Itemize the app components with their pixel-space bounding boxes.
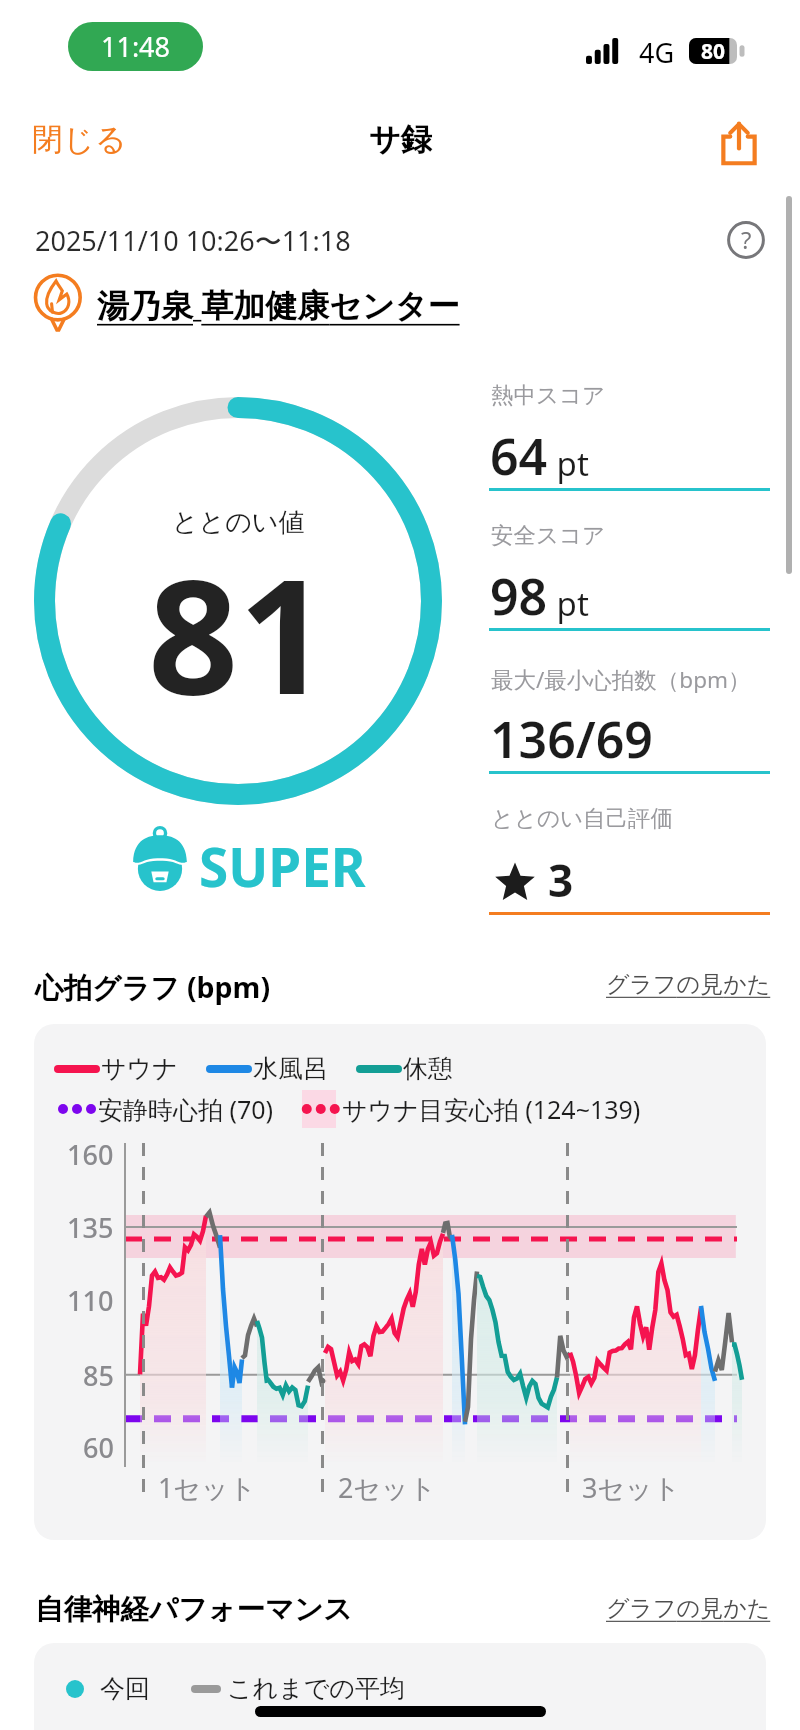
staticText: サウナ [101,1053,178,1084]
staticText: 64 [490,422,548,490]
staticText: pt [548,581,589,626]
button[interactable]: 閉じる [22,112,137,167]
staticText: これまでの平均 [227,1673,405,1704]
button[interactable]: グラフの見かた [606,1594,771,1623]
staticText: 自律神経パフォーマンス [35,1592,353,1628]
staticText: 136/69 [490,705,653,773]
staticText: 水風呂 [253,1053,328,1084]
staticText: 最大/最小心拍数（bpm） [491,664,751,695]
staticText: 81 [148,525,329,740]
staticText: 心拍グラフ (bpm) [35,968,271,1007]
staticText: グラフの見かた [606,970,771,999]
staticText: ? [741,223,752,256]
staticText: pt [548,441,589,486]
button[interactable]: Help [718,212,774,268]
staticText: 80 [701,37,726,63]
staticText: 4G [639,34,675,71]
staticText: 安静時心拍 (70) [98,1092,274,1126]
staticText: サウナ目安心拍 (124~139) [342,1092,641,1126]
staticText: 85 [83,1357,114,1394]
staticText: 閉じる [32,120,127,159]
staticText: ととのい値 [172,506,305,539]
button[interactable]: Share [706,110,772,176]
staticText: SUPER [199,830,366,902]
staticText: サ録 [369,120,432,159]
staticText: 2セット [338,1469,437,1506]
staticText: 安全スコア [491,521,606,549]
staticText: グラフの見かた [606,1594,771,1623]
staticText: 135 [67,1209,114,1246]
staticText: 3 [548,850,574,910]
staticText: 11:48 [101,28,171,65]
staticText: 熱中スコア [491,381,606,409]
staticText: 1セット [158,1469,257,1506]
staticText: 2025/11/10 10:26〜11:18 [35,222,351,259]
staticText: 110 [67,1282,114,1319]
staticText: 60 [83,1429,114,1466]
staticText: 休憩 [403,1053,453,1084]
staticText: 今回 [100,1673,150,1704]
staticText: 湯乃泉 草加健康センター [97,283,460,327]
staticText: 160 [67,1136,114,1173]
staticText: ととのい自己評価 [491,804,674,832]
button[interactable]: グラフの見かた [606,970,771,999]
staticText: 98 [490,562,548,630]
staticText: 3セット [582,1469,681,1506]
button[interactable] [26,270,476,332]
